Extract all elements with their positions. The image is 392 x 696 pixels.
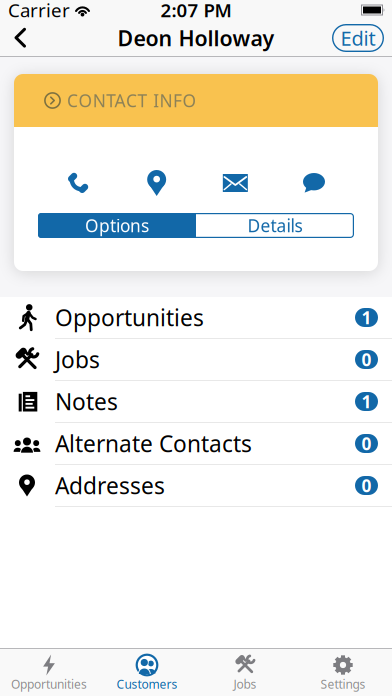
staticText: 1	[361, 390, 371, 413]
staticText: Carrier	[8, 0, 70, 22]
staticText: Customers	[116, 676, 177, 692]
button[interactable]: Jobs	[0, 339, 392, 380]
staticText: Opportunities	[55, 302, 204, 332]
button[interactable]: Edit	[332, 24, 384, 52]
staticText: Jobs	[55, 344, 100, 374]
button[interactable]: Alternate Contacts	[0, 423, 392, 464]
button[interactable]: Notes	[0, 381, 392, 422]
staticText: Notes	[55, 386, 118, 416]
button[interactable]: Map	[137, 169, 177, 197]
button[interactable]: Opportunities	[0, 649, 98, 696]
button[interactable]: Call	[58, 169, 98, 197]
button[interactable]: Customers	[98, 649, 196, 696]
button[interactable]: Addresses	[0, 465, 392, 506]
staticText: Options	[85, 214, 149, 237]
button[interactable]: Back	[0, 19, 27, 56]
staticText: Addresses	[55, 470, 165, 500]
staticText: Deon Holloway	[117, 24, 274, 52]
button[interactable]: Email	[215, 169, 255, 197]
button[interactable]: Details	[196, 213, 354, 238]
staticText: Details	[247, 214, 302, 237]
button[interactable]: Message	[294, 169, 334, 197]
staticText: CONTACT INFO	[67, 89, 196, 112]
staticText: Edit	[340, 25, 375, 51]
staticText: Alternate Contacts	[55, 428, 252, 458]
staticText: 0	[361, 348, 371, 371]
staticText: Settings	[320, 676, 365, 692]
staticText: Jobs	[233, 676, 256, 692]
button[interactable]: Options	[38, 213, 196, 238]
button[interactable]: Contact info	[14, 74, 378, 127]
button[interactable]: Settings	[294, 649, 392, 696]
staticText: 1	[361, 306, 371, 329]
staticText: 0	[361, 432, 371, 455]
button[interactable]: Jobs	[196, 649, 294, 696]
staticText: 2:07 PM	[160, 0, 231, 22]
button[interactable]: Opportunities	[0, 297, 392, 338]
staticText: Opportunities	[11, 676, 87, 692]
staticText: 0	[361, 474, 371, 497]
